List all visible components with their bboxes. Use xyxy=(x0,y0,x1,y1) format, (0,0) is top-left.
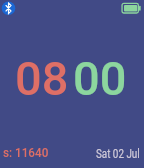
staticText: 08 xyxy=(15,51,69,106)
button[interactable]: s: 11640 xyxy=(3,145,49,160)
staticText: 00 xyxy=(73,51,127,106)
button[interactable] xyxy=(0,0,18,18)
button[interactable] xyxy=(120,0,144,16)
button[interactable]: Sat 02 Jul xyxy=(96,146,140,161)
